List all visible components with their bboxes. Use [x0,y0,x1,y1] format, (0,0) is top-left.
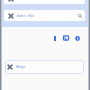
button[interactable]: Merge [5,60,84,74]
button[interactable]: Insert image [63,35,69,41]
staticText: Merge [16,65,26,69]
button[interactable]: Info [74,35,80,41]
button[interactable]: Anchor - Hold [4,10,85,21]
staticText: Anchor - Hold [17,14,34,18]
button[interactable]: Anchor - Hold [4,0,85,4]
button[interactable]: Bold [52,35,58,41]
button[interactable]: Search [76,12,84,20]
